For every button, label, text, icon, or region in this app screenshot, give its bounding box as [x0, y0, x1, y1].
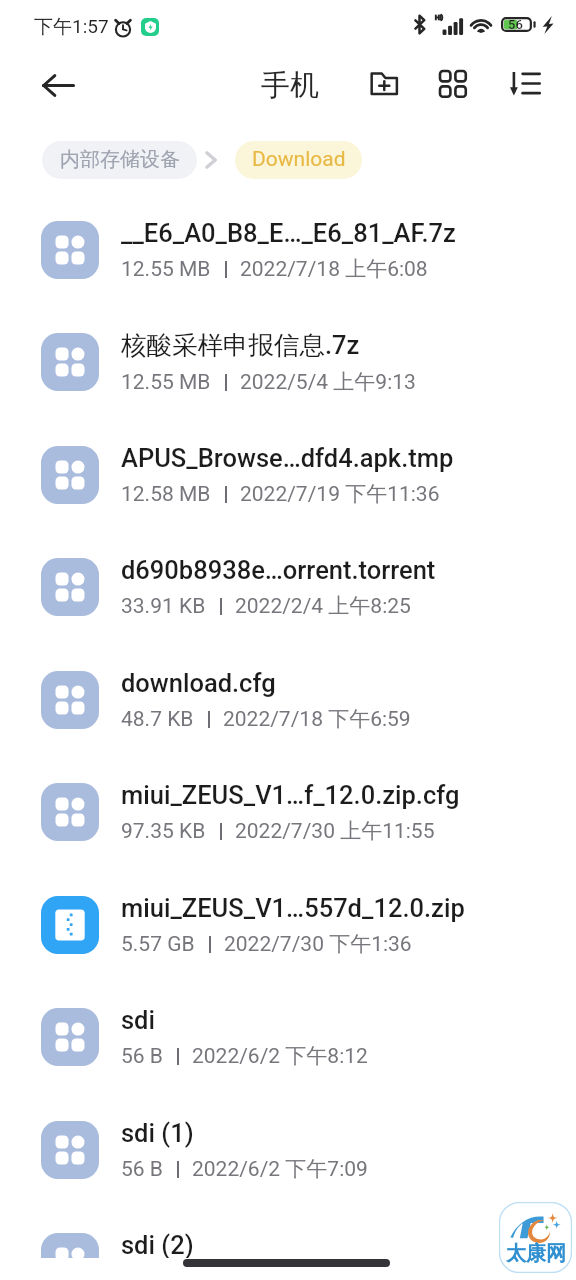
staticText: 手机 [261, 67, 319, 104]
staticText: 12.55 MB [121, 370, 211, 395]
staticText: 下午1:57 [34, 15, 109, 39]
button[interactable]: sdi [0, 981, 576, 1093]
staticText: 56 B [121, 1157, 163, 1182]
staticText: 48.7 KB [121, 707, 194, 732]
staticText: 2022/6/2 下午7:09 [192, 1156, 368, 1182]
button[interactable]: APUS_Browse…dfd4.apk.tmp [0, 419, 576, 531]
staticText: 内部存储设备 [60, 147, 180, 172]
staticText: 2022/7/18 上午6:08 [240, 256, 428, 282]
staticText: 2022/7/18 下午6:59 [223, 706, 411, 732]
staticText: APUS_Browse…dfd4.apk.tmp [121, 443, 454, 473]
button[interactable]: 内部存储设备 [42, 141, 197, 179]
button[interactable]: sdi (1) [0, 1094, 576, 1206]
staticText: 56 B [121, 1044, 163, 1069]
staticText: miui_ZEUS_V1…f_12.0.zip.cfg [121, 780, 460, 810]
staticText: 12.55 MB [121, 257, 211, 282]
staticText: 2022/7/19 下午11:36 [240, 481, 440, 507]
staticText: miui_ZEUS_V1…557d_12.0.zip [121, 893, 465, 923]
staticText: 2022/7/30 上午11:55 [235, 818, 435, 844]
button[interactable]: Grid view [426, 56, 481, 111]
staticText: 12.58 MB [121, 482, 211, 507]
button[interactable]: download.cfg [0, 644, 576, 756]
button[interactable]: sdi (2) [0, 1206, 576, 1258]
staticText: 2022/5/4 上午9:13 [240, 369, 416, 395]
staticText: sdi [121, 1005, 155, 1035]
button[interactable]: miui_ZEUS_V1…557d_12.0.zip [0, 869, 576, 981]
button[interactable]: Download [235, 141, 362, 179]
staticText: 2022/6/2 下午8:12 [192, 1043, 368, 1069]
staticText: 2022/2/4 上午8:25 [235, 593, 411, 619]
staticText: sdi (2) [121, 1230, 194, 1258]
staticText: 核酸采样申报信息.7z [121, 329, 360, 361]
button[interactable]: __E6_A0_B8_E…_E6_81_AF.7z [0, 194, 576, 306]
button[interactable]: Back [30, 57, 86, 113]
button[interactable]: miui_ZEUS_V1…f_12.0.zip.cfg [0, 756, 576, 868]
staticText: 33.91 KB [121, 594, 206, 619]
button[interactable]: 核酸采样申报信息.7z [0, 306, 576, 418]
staticText: __E6_A0_B8_E…_E6_81_AF.7z [121, 218, 456, 248]
staticText: sdi (1) [121, 1118, 194, 1148]
staticText: 2022/7/30 下午1:36 [224, 931, 412, 957]
staticText: download.cfg [121, 668, 276, 698]
staticText: 56 [508, 17, 523, 32]
staticText: 97.35 KB [121, 819, 206, 844]
staticText: d690b8938e…orrent.torrent [121, 555, 436, 585]
staticText: Download [252, 147, 346, 172]
button[interactable]: New folder [356, 56, 411, 111]
staticText: 5.57 GB [121, 932, 195, 957]
button[interactable]: Sort [497, 56, 552, 111]
button[interactable]: d690b8938e…orrent.torrent [0, 531, 576, 643]
staticText: 太康网 [506, 1241, 566, 1266]
